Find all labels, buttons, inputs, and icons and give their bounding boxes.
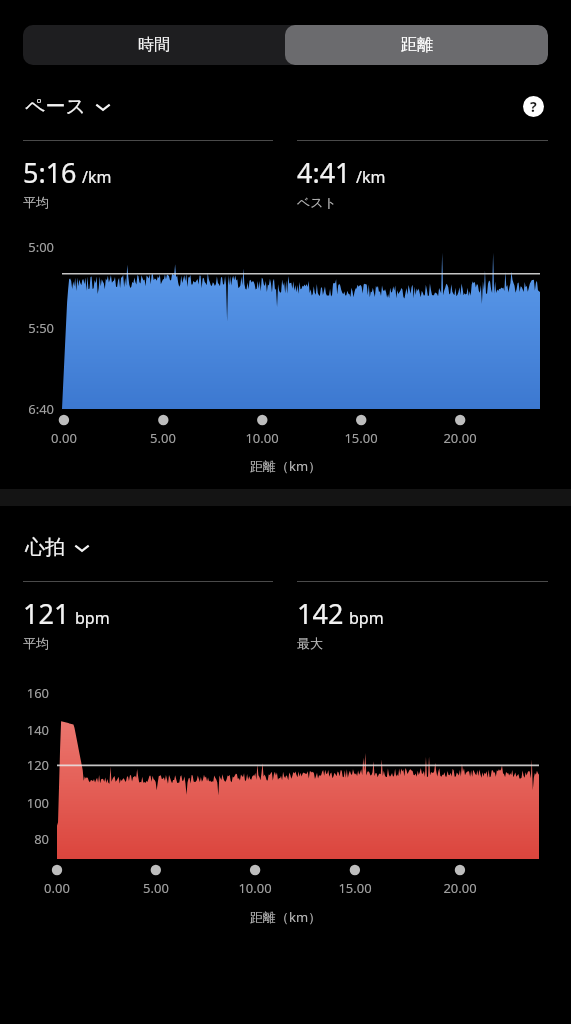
staticText: 距離（km） — [250, 908, 322, 926]
staticText: 心拍 — [25, 535, 65, 560]
staticText: /km — [356, 166, 386, 188]
staticText: 120 — [26, 756, 49, 774]
staticText: 平均 — [23, 194, 49, 210]
staticText: 121 — [23, 595, 70, 632]
staticText: 80 — [34, 830, 49, 848]
staticText: 5:50 — [28, 319, 54, 337]
staticText: ? — [530, 97, 537, 116]
staticText: 20.00 — [443, 879, 477, 897]
staticText: 5:00 — [28, 238, 54, 256]
staticText: 距離（km） — [250, 457, 322, 475]
button[interactable]: ヘルプ — [518, 91, 548, 121]
staticText: 5:16 — [23, 154, 77, 191]
staticText: 最大 — [297, 635, 323, 651]
button[interactable]: 時間 — [23, 25, 285, 65]
staticText: 20.00 — [443, 429, 477, 447]
staticText: /km — [82, 166, 112, 188]
staticText: 5.00 — [143, 879, 169, 897]
staticText: 10.00 — [238, 879, 272, 897]
staticText: 0.00 — [44, 879, 70, 897]
staticText: 平均 — [23, 635, 49, 651]
staticText: ベスト — [297, 194, 337, 210]
staticText: bpm — [349, 607, 384, 629]
staticText: 15.00 — [338, 879, 372, 897]
staticText: 160 — [26, 684, 49, 702]
button[interactable]: ペース — [23, 90, 113, 123]
staticText: 時間 — [138, 35, 170, 55]
staticText: 距離 — [401, 35, 433, 55]
staticText: 0.00 — [51, 429, 77, 447]
staticText: 140 — [26, 721, 49, 739]
staticText: 15.00 — [344, 429, 378, 447]
button[interactable]: 心拍 — [23, 531, 92, 564]
staticText: 142 — [297, 595, 344, 632]
staticText: 100 — [26, 794, 49, 812]
staticText: ペース — [25, 94, 86, 119]
staticText: 10.00 — [245, 429, 279, 447]
staticText: 4:41 — [297, 154, 351, 191]
staticText: 5.00 — [150, 429, 176, 447]
staticText: 6:40 — [28, 400, 54, 418]
staticText: bpm — [75, 607, 110, 629]
button[interactable]: 距離 — [285, 25, 548, 65]
